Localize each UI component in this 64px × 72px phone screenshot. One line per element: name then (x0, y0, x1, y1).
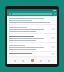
button[interactable]: Alerts (39, 58, 43, 63)
button[interactable]: Profile (47, 58, 51, 63)
button[interactable]: Add (30, 58, 34, 63)
button[interactable] (8, 34, 56, 42)
button[interactable] (8, 43, 56, 51)
button[interactable] (8, 17, 56, 24)
button[interactable] (8, 25, 56, 33)
button[interactable]: Menu (8, 12, 11, 15)
button[interactable]: Home (13, 58, 17, 63)
button[interactable] (8, 52, 56, 56)
button[interactable]: Lists (21, 58, 25, 63)
button[interactable]: Search (53, 12, 56, 15)
